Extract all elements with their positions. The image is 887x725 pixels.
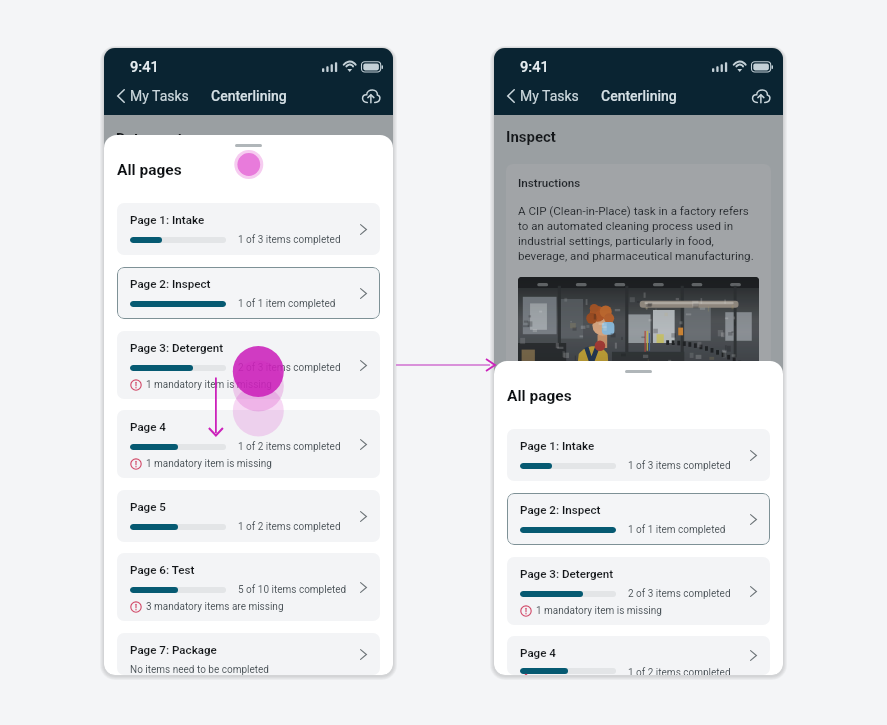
staticText: 1 of 1 item completed: [628, 524, 726, 536]
staticText: 1 of 2 items completed: [238, 441, 341, 453]
staticText: 2 of 3 items completed: [238, 362, 341, 374]
staticText: 2 of 3 items completed: [628, 588, 731, 600]
staticText: All pages: [117, 161, 182, 179]
button[interactable]: Page 7: Package: [117, 633, 380, 675]
staticText: 3 mandatory items are missing: [146, 601, 284, 613]
button[interactable]: Upload to cloud: [743, 82, 783, 110]
button[interactable]: Page 4: [117, 410, 380, 478]
staticText: 1 of 3 items completed: [238, 234, 341, 246]
staticText: 1 of 1 item completed: [238, 298, 336, 310]
staticText: Page 5: [130, 500, 166, 514]
staticText: Page 6: Test: [130, 563, 195, 577]
staticText: Page 7: Package: [130, 643, 217, 657]
button[interactable]: Page 1: Intake: [117, 203, 380, 255]
button[interactable]: Page 1: Intake: [507, 429, 770, 481]
button[interactable]: Page 3: Detergent: [117, 331, 380, 399]
staticText: 1 of 3 items completed: [628, 460, 731, 472]
staticText: Page 2: Inspect: [130, 277, 211, 291]
button[interactable]: Page 6: Test: [117, 553, 380, 621]
staticText: Page 1: Intake: [130, 213, 205, 227]
staticText: 1 of 2 items completed: [238, 521, 341, 533]
button[interactable]: Page 2: Inspect: [507, 493, 770, 545]
staticText: 9:41: [520, 58, 549, 75]
staticText: 1 mandatory item is missing: [146, 458, 272, 470]
staticText: My Tasks: [520, 88, 579, 104]
staticText: Page 3: Detergent: [520, 567, 614, 581]
button[interactable]: My Tasks: [104, 82, 197, 110]
button[interactable]: Page 2: Inspect: [117, 267, 380, 319]
staticText: Inspect: [506, 128, 556, 146]
staticText: Centerlining: [211, 88, 287, 104]
staticText: Page 4: [130, 420, 166, 434]
staticText: 9:41: [130, 58, 159, 75]
staticText: A CIP (Clean-in-Place) task in a factory…: [518, 204, 759, 263]
staticText: Page 1: Intake: [520, 439, 595, 453]
staticText: 5 of 10 items completed: [238, 584, 347, 596]
staticText: My Tasks: [130, 88, 189, 104]
staticText: Detergent: [116, 130, 183, 135]
button[interactable]: My Tasks: [494, 82, 587, 110]
button[interactable]: Upload to cloud: [353, 82, 393, 110]
staticText: Page 3: Detergent: [130, 341, 224, 355]
button[interactable]: Page 5: [117, 490, 380, 542]
button[interactable]: Page 3: Detergent: [507, 557, 770, 625]
staticText: All pages: [507, 387, 572, 405]
staticText: Page 4: [520, 646, 556, 660]
button[interactable]: Page 4: [507, 636, 770, 675]
staticText: 1 mandatory item is missing: [536, 605, 662, 617]
staticText: No items need to be completed: [130, 664, 270, 675]
staticText: 1 mandatory item is missing: [146, 379, 272, 391]
staticText: Instructions: [518, 176, 581, 190]
staticText: 1 of 2 items completed: [628, 667, 731, 675]
staticText: Page 2: Inspect: [520, 503, 601, 517]
staticText: Centerlining: [601, 88, 677, 104]
